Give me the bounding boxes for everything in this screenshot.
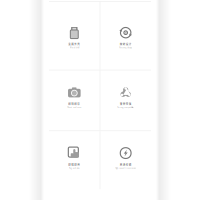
button[interactable]: 金属外壳 (49, 2, 100, 70)
staticText: 金属外壳 (68, 42, 80, 46)
staticText: High speed transmission (115, 167, 136, 169)
staticText: 高速传输 (120, 162, 132, 166)
staticText: Metal shell (70, 46, 79, 49)
staticText: 旋转设计 (120, 42, 132, 46)
button[interactable]: 高速传输 (100, 131, 151, 189)
button[interactable]: 旋转设计 (100, 2, 151, 70)
button[interactable]: 即插即用 (49, 131, 100, 189)
staticText: Plug and play (69, 167, 80, 169)
button[interactable]: 即拍即存 (49, 70, 100, 130)
staticText: Shoot and save (67, 106, 81, 108)
staticText: 即插即用 (68, 162, 80, 166)
staticText: 即拍即存 (68, 102, 80, 105)
staticText: Strong compatibility (117, 106, 134, 108)
staticText: 兼容性强 (120, 102, 132, 105)
staticText: Rotating design (119, 46, 132, 49)
button[interactable]: 兼容性强 (100, 70, 151, 130)
